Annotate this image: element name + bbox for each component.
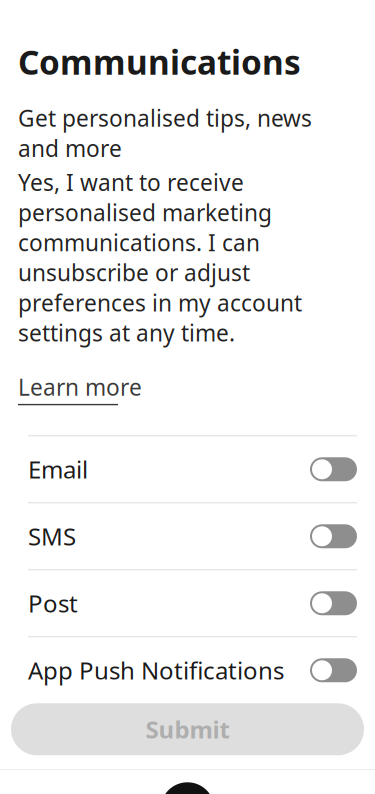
- button[interactable]: Post: [18, 570, 357, 636]
- button[interactable]: App Push Notifications: [18, 637, 357, 703]
- button[interactable]: Submit: [11, 703, 364, 755]
- staticText: Communications: [18, 40, 301, 84]
- staticText: Yes, I want to receive personalised mark…: [18, 167, 302, 348]
- button[interactable]: Account: [150, 770, 225, 794]
- staticText: Learn more: [18, 372, 142, 402]
- staticText: Submit: [145, 713, 229, 745]
- staticText: SMS: [28, 520, 76, 552]
- staticText: App Push Notifications: [28, 654, 284, 686]
- button[interactable]: SMS: [18, 503, 357, 569]
- button[interactable]: Learn more: [18, 372, 142, 405]
- staticText: Email: [28, 453, 88, 485]
- button[interactable]: Email: [18, 436, 357, 502]
- staticText: Post: [28, 587, 78, 619]
- staticText: Get personalised tips, news and more: [18, 103, 312, 163]
